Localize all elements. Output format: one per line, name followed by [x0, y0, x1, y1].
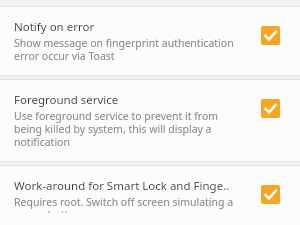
staticText: Work-around for Smart Lock and Finge.. [14, 178, 230, 194]
button[interactable]: Notify on error [0, 7, 300, 75]
button[interactable]: Work-around for Smart Lock and Finge.. [0, 166, 300, 225]
button[interactable]: Work-around for Smart Lock and Finge.. [252, 185, 288, 204]
button[interactable]: Foreground service [0, 80, 300, 161]
staticText: Requires root. Switch off screen simulat… [14, 195, 242, 213]
button[interactable]: Notify on error [252, 26, 288, 45]
staticText: Show message on fingerprint authenticati… [14, 36, 242, 63]
staticText: Notify on error [14, 19, 95, 35]
button[interactable]: Foreground service [252, 99, 288, 118]
staticText: Use foreground service to prevent it fro… [14, 109, 242, 149]
staticText: Foreground service [14, 92, 119, 108]
